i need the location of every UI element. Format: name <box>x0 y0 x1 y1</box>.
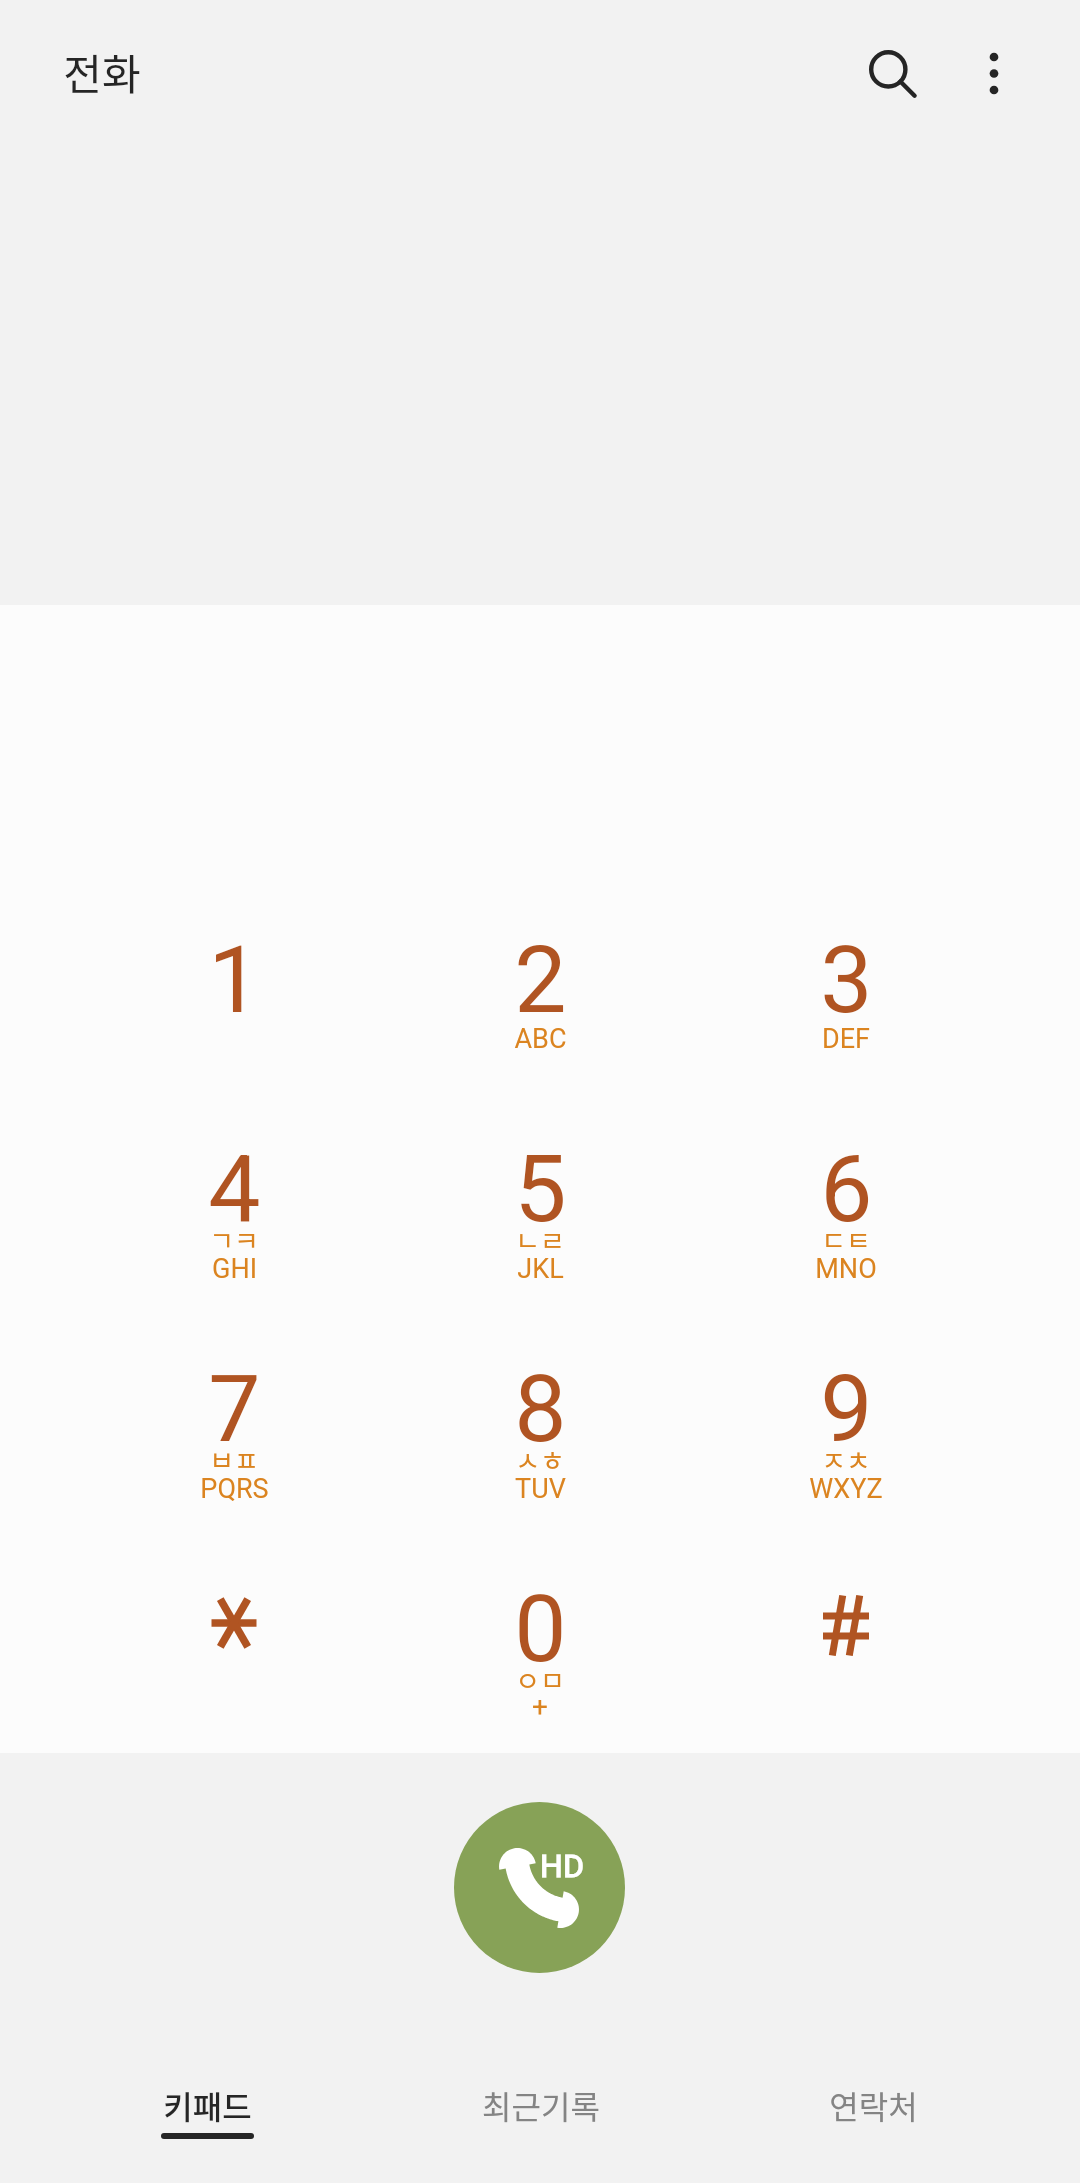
button[interactable] <box>81 1575 387 1790</box>
button[interactable]: 0 <box>387 1575 693 1790</box>
staticText: ㄱㅋ <box>209 1220 259 1259</box>
button[interactable]: 키패드 <box>40 2055 374 2165</box>
staticText: GHI <box>212 1253 257 1285</box>
button[interactable]: 5 <box>387 1135 693 1350</box>
staticText: 6 <box>820 1135 873 1244</box>
staticText: 3 <box>820 926 873 1035</box>
staticText: + <box>532 1690 548 1723</box>
button[interactable]: 연락처 <box>707 2055 1040 2165</box>
staticText: 키패드 <box>163 2082 252 2128</box>
button[interactable]: 7 <box>81 1355 387 1570</box>
button[interactable]: Call <box>454 1802 625 1973</box>
staticText: MNO <box>815 1253 877 1285</box>
staticText: 0 <box>514 1575 567 1684</box>
staticText: DEF <box>822 1023 870 1055</box>
button[interactable]: 6 <box>693 1135 999 1350</box>
staticText: ABC <box>514 1023 567 1055</box>
button[interactable]: Search <box>838 20 938 120</box>
button[interactable]: 4 <box>81 1135 387 1350</box>
staticText: JKL <box>517 1253 564 1285</box>
staticText: 최근기록 <box>482 2082 600 2128</box>
staticText: ㅂㅍ <box>209 1440 259 1479</box>
button[interactable]: 3 <box>693 926 999 1141</box>
staticText: 8 <box>514 1355 567 1464</box>
button[interactable]: More options <box>944 20 1044 120</box>
staticText: 연락처 <box>829 2082 918 2128</box>
staticText: 4 <box>208 1135 261 1244</box>
staticText: 7 <box>208 1355 261 1464</box>
staticText: 2 <box>514 926 567 1035</box>
button[interactable]: 9 <box>693 1355 999 1570</box>
staticText: WXYZ <box>809 1473 883 1505</box>
button[interactable]: 1 <box>81 926 387 1141</box>
staticText: 전화 <box>63 41 141 102</box>
button[interactable]: 최근기록 <box>374 2055 707 2165</box>
button[interactable] <box>693 1575 999 1790</box>
staticText: 9 <box>820 1355 873 1464</box>
staticText: ㄷㅌ <box>821 1220 871 1259</box>
staticText: ㅅㅎ <box>515 1440 565 1479</box>
staticText: ㅇㅁ <box>515 1660 565 1699</box>
staticText: PQRS <box>200 1473 269 1505</box>
staticText: 5 <box>514 1135 567 1244</box>
staticText: ㄴㄹ <box>515 1220 565 1259</box>
staticText: 1 <box>208 926 261 1035</box>
staticText: TUV <box>515 1473 566 1505</box>
button[interactable]: 8 <box>387 1355 693 1570</box>
staticText: ㅈㅊ <box>821 1440 871 1479</box>
staticText: HD <box>540 1847 584 1885</box>
button[interactable]: 2 <box>387 926 693 1141</box>
